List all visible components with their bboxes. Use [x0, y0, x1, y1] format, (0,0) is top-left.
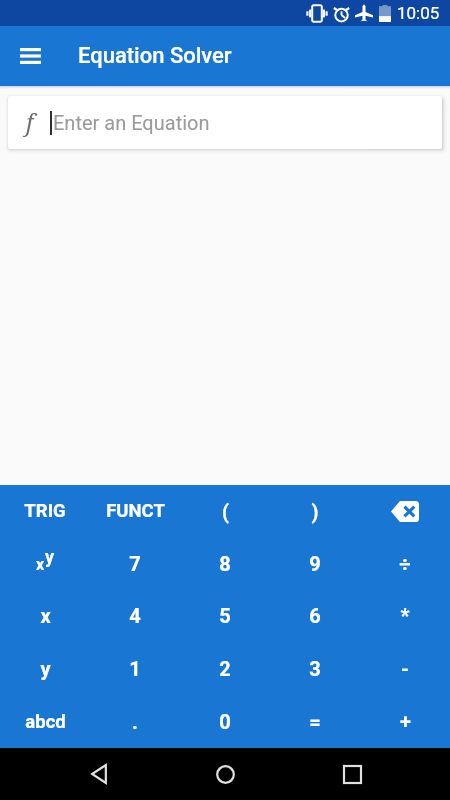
button[interactable]: Home [197, 748, 253, 800]
button[interactable]: Back [71, 748, 127, 800]
button[interactable]: + [360, 695, 450, 748]
staticText: 3 [309, 657, 321, 680]
staticText: Equation Solver [78, 43, 232, 69]
staticText: 2 [219, 657, 231, 680]
staticText: ) [311, 500, 319, 523]
button[interactable]: 7 [90, 537, 180, 589]
button[interactable]: 1 [90, 642, 180, 695]
staticText: 10:05 [397, 3, 440, 23]
staticText: 8 [219, 552, 231, 575]
button[interactable]: 4 [90, 589, 180, 642]
staticText: 4 [129, 604, 141, 627]
staticText: - [401, 657, 409, 680]
staticText: Enter an Equation [53, 111, 210, 134]
button[interactable]: Open navigation menu [0, 26, 60, 86]
staticText: 0 [219, 710, 231, 733]
staticText: x [36, 555, 45, 574]
button[interactable]: 0 [180, 695, 270, 748]
staticText: TRIG [24, 500, 66, 522]
staticText: 6 [309, 604, 321, 627]
button[interactable]: TRIG [0, 485, 90, 537]
button[interactable]: - [360, 642, 450, 695]
staticText: * [400, 604, 410, 627]
button[interactable]: 9 [270, 537, 360, 589]
staticText: = [309, 710, 321, 733]
button[interactable]: abcd [0, 695, 90, 748]
staticText: ÷ [399, 552, 411, 575]
button[interactable]: ÷ [360, 537, 450, 589]
staticText: + [400, 710, 411, 733]
button[interactable]: 6 [270, 589, 360, 642]
button[interactable]: f [8, 96, 442, 149]
button[interactable]: = [270, 695, 360, 748]
button[interactable]: FUNCT [90, 485, 180, 537]
staticText: y [40, 657, 51, 680]
button[interactable]: x [0, 589, 90, 642]
staticText: 1 [129, 657, 141, 680]
staticText: x [40, 604, 51, 627]
staticText: abcd [25, 711, 66, 733]
button[interactable]: y [0, 642, 90, 695]
button[interactable]: 2 [180, 642, 270, 695]
other: Backspace [391, 501, 419, 522]
button[interactable]: . [90, 695, 180, 748]
staticText: FUNCT [106, 500, 165, 522]
button[interactable]: ( [180, 485, 270, 537]
staticText: y [45, 546, 55, 567]
button[interactable]: x [0, 537, 90, 589]
button[interactable]: 3 [270, 642, 360, 695]
staticText: 5 [219, 604, 231, 627]
staticText: ( [222, 500, 229, 523]
staticText: f [26, 106, 34, 137]
staticText: . [132, 710, 138, 733]
button[interactable]: 8 [180, 537, 270, 589]
button[interactable]: Backspace [360, 485, 450, 537]
button[interactable]: Recent apps [324, 748, 380, 800]
staticText: 7 [129, 552, 141, 575]
button[interactable]: ) [270, 485, 360, 537]
staticText: 9 [309, 552, 321, 575]
button[interactable]: * [360, 589, 450, 642]
button[interactable]: 5 [180, 589, 270, 642]
